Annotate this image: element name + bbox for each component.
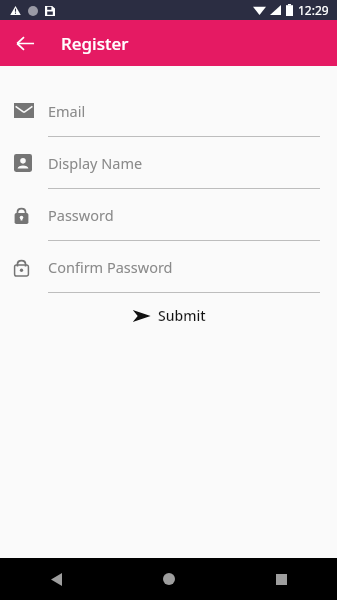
button[interactable]: Submit: [124, 300, 214, 331]
staticText: Email: [48, 101, 86, 121]
staticText: Confirm Password: [48, 257, 173, 277]
button[interactable]: Back: [0, 558, 113, 600]
staticText: Register: [61, 32, 129, 55]
button[interactable]: Recents: [225, 558, 337, 600]
staticText: Display Name: [48, 153, 143, 173]
button[interactable]: Email: [0, 85, 337, 137]
button[interactable]: Password: [0, 189, 337, 241]
button[interactable]: Confirm Password: [0, 241, 337, 293]
staticText: Submit: [158, 306, 206, 325]
staticText: 12:29: [298, 2, 329, 18]
button[interactable]: Back: [8, 26, 42, 60]
button[interactable]: Home: [113, 558, 225, 600]
button[interactable]: Display Name: [0, 137, 337, 189]
staticText: Password: [48, 205, 114, 225]
